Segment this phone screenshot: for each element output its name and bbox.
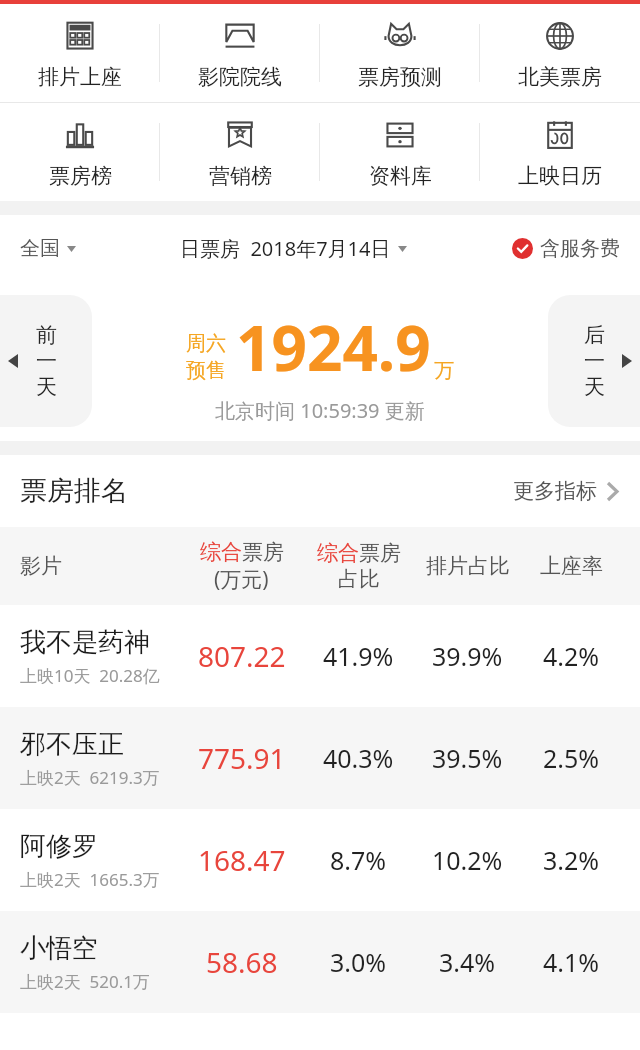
button[interactable]: 营销榜	[160, 103, 320, 201]
staticText: 4.2%	[543, 639, 600, 673]
button[interactable]: 日票房 2018年7月14日	[178, 229, 409, 268]
staticText: 前	[36, 322, 57, 348]
staticText: 后	[584, 322, 605, 348]
staticText: 票房榜	[49, 163, 112, 189]
button[interactable]: 后一天	[548, 295, 640, 427]
staticText: 上映10天 20.28亿	[20, 664, 160, 687]
staticText: 票房	[242, 539, 284, 565]
staticText: 2.5%	[543, 741, 600, 775]
staticText: 预售	[186, 358, 226, 383]
staticText: 3.4%	[439, 945, 496, 979]
staticText: 807.22	[198, 637, 286, 675]
staticText: 我不是药神	[20, 626, 150, 659]
button[interactable]: 票房预测	[320, 4, 480, 102]
button[interactable]: 前一天	[0, 295, 92, 427]
staticText: 1924.9	[236, 305, 431, 389]
staticText: 41.9%	[323, 639, 394, 673]
staticText: 168.47	[198, 841, 286, 879]
staticText: 上映日历	[518, 163, 602, 189]
staticText: 小悟空	[20, 932, 98, 965]
staticText: 上映2天 520.1万	[20, 970, 151, 993]
staticText: 综合	[317, 540, 359, 566]
staticText: 天	[36, 374, 57, 400]
staticText: 票房排名	[20, 474, 128, 508]
button[interactable]: 票房榜	[0, 103, 160, 201]
staticText: 营销榜	[209, 163, 272, 189]
staticText: 58.68	[206, 943, 278, 981]
button[interactable]: 小悟空	[0, 911, 640, 1013]
button[interactable]: 资料库	[320, 103, 480, 201]
staticText: 北京时间 10:59:39 更新	[215, 397, 425, 424]
staticText: 39.9%	[432, 639, 503, 673]
staticText: 4.1%	[543, 945, 600, 979]
staticText: 影院院线	[198, 64, 282, 90]
staticText: 资料库	[369, 163, 432, 189]
staticText: 一	[584, 348, 605, 374]
staticText: 10.2%	[432, 843, 503, 877]
staticText: 影片	[20, 553, 62, 579]
staticText: 阿修罗	[20, 830, 98, 863]
staticText: 3.2%	[543, 843, 600, 877]
staticText: 北美票房	[518, 64, 602, 90]
button[interactable]: 全国	[18, 230, 78, 267]
staticText: 万	[434, 358, 454, 383]
button[interactable]: 上映日历	[480, 103, 640, 201]
staticText: 天	[584, 374, 605, 400]
staticText: 票房	[359, 540, 401, 566]
button[interactable]: 北美票房	[480, 4, 640, 102]
staticText: 票房预测	[358, 64, 442, 90]
staticText: 占比	[338, 566, 380, 592]
staticText: 3.0%	[330, 945, 387, 979]
staticText: 一	[36, 348, 57, 374]
staticText: 周六	[186, 331, 226, 356]
button[interactable]: 排片上座	[0, 4, 160, 102]
staticText: 8.7%	[330, 843, 387, 877]
staticText: 综合	[200, 539, 242, 565]
staticText: 排片占比	[426, 553, 510, 579]
staticText: 全国	[20, 236, 60, 261]
staticText: 39.5%	[432, 741, 503, 775]
staticText: 含服务费	[540, 236, 620, 261]
staticText: 40.3%	[323, 741, 394, 775]
staticText: 更多指标	[513, 478, 597, 504]
staticText: (万元)	[214, 565, 269, 594]
button[interactable]: 邪不压正	[0, 707, 640, 809]
staticText: 上映2天 1665.3万	[20, 868, 160, 891]
button[interactable]: 我不是药神	[0, 605, 640, 707]
staticText: 上座率	[540, 553, 603, 579]
staticText: 排片上座	[38, 64, 122, 90]
staticText: 775.91	[198, 739, 286, 777]
staticText: 邪不压正	[20, 728, 124, 761]
button[interactable]: 更多指标	[511, 470, 620, 512]
button[interactable]: 阿修罗	[0, 809, 640, 911]
staticText: 日票房 2018年7月14日	[180, 235, 391, 262]
button[interactable]: 影院院线	[160, 4, 320, 102]
staticText: 上映2天 6219.3万	[20, 766, 160, 789]
button[interactable]: 含服务费	[510, 230, 622, 267]
